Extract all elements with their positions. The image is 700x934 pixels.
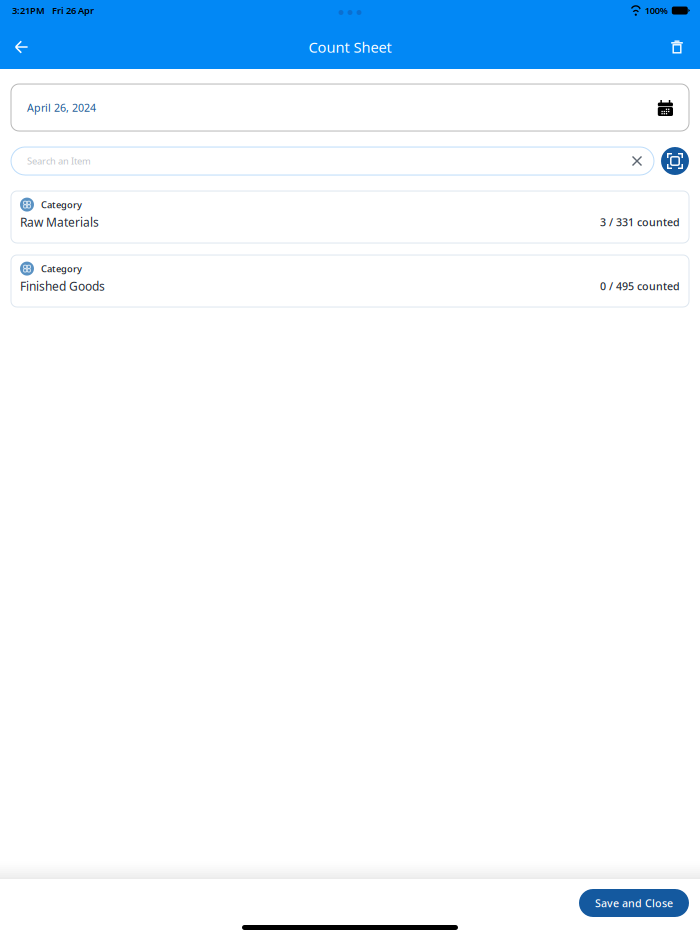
staticText: Raw Materials: [20, 214, 99, 230]
button[interactable]: Clear search: [626, 150, 648, 172]
button[interactable]: April 26, 2024: [11, 84, 689, 131]
button[interactable]: Delete count sheet: [655, 25, 699, 69]
staticText: Fri 26 Apr: [52, 4, 94, 17]
button[interactable]: Category: [11, 255, 689, 307]
staticText: 0 / 495 counted: [600, 279, 680, 293]
staticText: Save and Close: [595, 896, 673, 910]
staticText: Search an Item: [27, 155, 91, 167]
staticText: Count Sheet: [308, 37, 391, 57]
button[interactable]: Back: [0, 25, 43, 69]
button[interactable]: Category: [11, 191, 689, 243]
staticText: 3:21PM: [12, 4, 45, 17]
staticText: Category: [41, 262, 82, 275]
staticText: Finished Goods: [20, 278, 105, 294]
button[interactable]: Scan barcode: [661, 147, 689, 175]
staticText: April 26, 2024: [27, 100, 96, 115]
staticText: 3 / 331 counted: [600, 215, 680, 229]
staticText: 100%: [645, 4, 668, 17]
button[interactable]: Save and Close: [579, 889, 689, 917]
staticText: Category: [41, 198, 82, 211]
